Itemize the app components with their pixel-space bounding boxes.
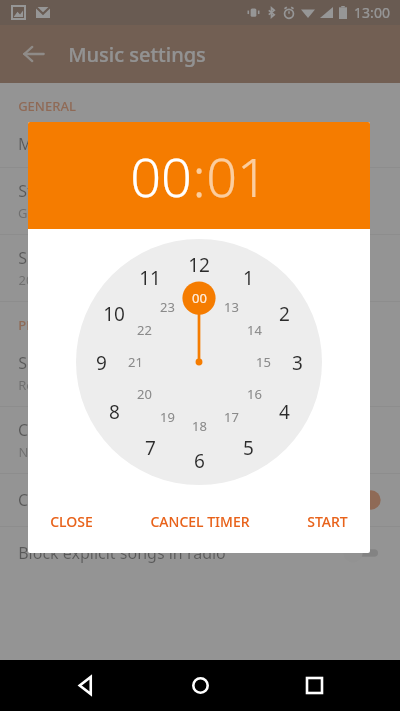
staticText: 00: [192, 289, 207, 307]
staticText: Sound effects: [18, 352, 121, 374]
staticText: START: [307, 512, 348, 531]
staticText: Music settings: [68, 41, 206, 68]
staticText: 6: [194, 448, 205, 472]
staticText: 13: [224, 298, 239, 316]
staticText: Gallery: [18, 204, 61, 222]
button[interactable]: Recents: [286, 660, 342, 711]
button[interactable]: Back: [58, 660, 114, 711]
staticText: Crossfade: [18, 419, 93, 441]
staticText: 19: [160, 408, 175, 426]
button[interactable]: Sleep timer: [0, 235, 400, 301]
staticText: 4: [279, 399, 290, 423]
staticText: 14: [247, 321, 262, 339]
staticText: 9: [96, 350, 107, 374]
staticText: 7: [145, 435, 156, 459]
staticText: 00: [130, 139, 192, 213]
staticText: Cache music while streaming: [18, 489, 237, 511]
button[interactable]: CLOSE: [42, 504, 101, 539]
staticText: 8: [109, 399, 120, 423]
staticText: Music quality: [18, 133, 117, 155]
staticText: PLAYBACK: [18, 316, 82, 334]
staticText: 17: [224, 408, 239, 426]
button[interactable]: Home: [172, 660, 228, 711]
button[interactable]: Back: [14, 34, 54, 74]
staticText: 18: [192, 417, 207, 435]
button[interactable]: Hour picker: [76, 239, 322, 485]
button[interactable]: CANCEL TIMER: [142, 504, 258, 539]
staticText: 11: [139, 265, 161, 289]
staticText: 20 minutes: [18, 271, 87, 289]
staticText: Storage location: [18, 180, 141, 202]
button[interactable]: Cache music while streaming: [0, 474, 400, 526]
staticText: 5: [243, 435, 254, 459]
button[interactable]: Block explicit songs in radio: [0, 527, 400, 579]
staticText: 13:00: [354, 3, 390, 22]
staticText: 16: [247, 385, 262, 403]
staticText: 22: [137, 321, 152, 339]
button[interactable]: Music quality: [0, 121, 400, 167]
staticText: Reverb: [18, 376, 61, 394]
staticText: Sleep timer: [18, 247, 104, 269]
staticText: 2: [279, 301, 290, 325]
staticText: 10: [103, 301, 125, 325]
staticText: 15: [256, 353, 271, 371]
staticText: 3: [292, 350, 303, 374]
staticText: CLOSE: [50, 512, 93, 531]
button[interactable]: Crossfade: [0, 407, 400, 473]
staticText: GENERAL: [18, 97, 76, 115]
button[interactable]: Sound effects: [0, 340, 400, 406]
staticText: Block explicit songs in radio: [18, 542, 226, 564]
staticText: 20: [137, 385, 152, 403]
staticText: 21: [128, 353, 143, 371]
staticText: :: [192, 139, 206, 213]
staticText: 12: [188, 252, 210, 276]
staticText: 01: [206, 139, 268, 213]
button[interactable]: START: [299, 504, 356, 539]
button[interactable]: 00: [130, 139, 192, 213]
staticText: None: [18, 443, 52, 461]
button[interactable]: Storage location: [0, 168, 400, 234]
button[interactable]: 01: [206, 139, 268, 213]
staticText: 1: [243, 265, 254, 289]
staticText: CANCEL TIMER: [150, 512, 250, 531]
staticText: 23: [160, 298, 175, 316]
